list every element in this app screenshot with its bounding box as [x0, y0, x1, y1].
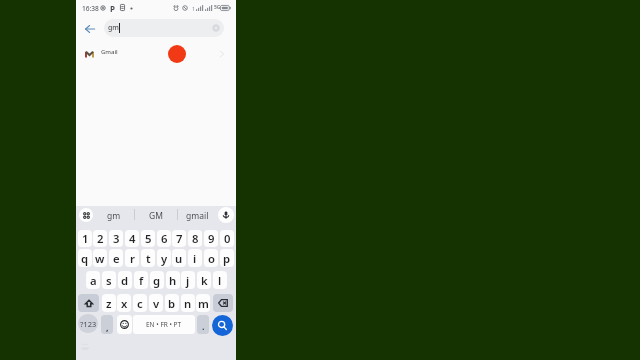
- staticText: i: [193, 251, 197, 266]
- staticText: ,: [106, 321, 109, 333]
- staticText: gm: [107, 210, 121, 222]
- button[interactable]: p: [220, 249, 234, 267]
- button[interactable]: y: [157, 249, 171, 267]
- staticText: 4: [129, 231, 136, 246]
- button[interactable]: w: [93, 249, 107, 267]
- staticText: d: [121, 273, 129, 288]
- staticText: a: [90, 273, 97, 288]
- button[interactable]: g: [150, 271, 164, 289]
- button[interactable]: n: [181, 294, 195, 312]
- button[interactable]: gm: [104, 19, 224, 37]
- button[interactable]: 5: [141, 230, 155, 247]
- button[interactable]: gm: [96, 206, 132, 225]
- button[interactable]: e: [109, 249, 123, 267]
- button[interactable]: i: [188, 249, 202, 267]
- staticText: p: [223, 251, 231, 266]
- button[interactable]: 8: [188, 230, 202, 247]
- button[interactable]: gmail: [179, 206, 215, 225]
- staticText: v: [153, 296, 160, 311]
- button[interactable]: 2: [93, 230, 107, 247]
- staticText: m: [198, 296, 209, 311]
- staticText: f: [139, 273, 144, 288]
- button[interactable]: 1: [78, 230, 92, 247]
- staticText: ?123: [80, 319, 97, 329]
- staticText: r: [130, 251, 135, 266]
- button[interactable]: ,: [101, 315, 113, 334]
- staticText: w: [95, 251, 105, 266]
- staticText: 5G: [214, 4, 221, 11]
- staticText: 9: [208, 231, 215, 246]
- staticText: gmail: [186, 210, 209, 222]
- button[interactable]: 9: [204, 230, 218, 247]
- button[interactable]: j: [181, 271, 195, 289]
- button[interactable]: Search: [212, 315, 233, 336]
- button[interactable]: GM: [138, 206, 174, 225]
- button[interactable]: Gmail: [76, 40, 236, 67]
- staticText: x: [121, 296, 128, 311]
- staticText: t: [146, 251, 151, 266]
- button[interactable]: c: [133, 294, 147, 312]
- button[interactable]: f: [134, 271, 148, 289]
- staticText: gm: [108, 23, 119, 33]
- staticText: q: [81, 251, 89, 266]
- staticText: 1: [192, 5, 196, 12]
- button[interactable]: q: [78, 249, 92, 267]
- button[interactable]: o: [204, 249, 218, 267]
- button[interactable]: Keyboard toolbar: [79, 208, 93, 222]
- staticText: EN • FR • PT: [146, 320, 182, 329]
- button[interactable]: d: [118, 271, 132, 289]
- staticText: GM: [149, 210, 163, 222]
- staticText: 5: [145, 231, 152, 246]
- staticText: 2: [97, 231, 104, 246]
- button[interactable]: l: [213, 271, 227, 289]
- button[interactable]: u: [172, 249, 186, 267]
- staticText: Gmail: [101, 48, 118, 56]
- staticText: l: [218, 273, 222, 288]
- staticText: h: [169, 273, 177, 288]
- button[interactable]: 6: [157, 230, 171, 247]
- button[interactable]: a: [86, 271, 100, 289]
- button[interactable]: 4: [125, 230, 139, 247]
- staticText: s: [106, 273, 112, 288]
- button[interactable]: Shift: [78, 294, 99, 312]
- button[interactable]: 0: [220, 230, 234, 247]
- button[interactable]: k: [197, 271, 211, 289]
- button[interactable]: 3: [109, 230, 123, 247]
- staticText: k: [201, 273, 208, 288]
- staticText: c: [137, 296, 143, 311]
- button[interactable]: v: [149, 294, 163, 312]
- staticText: 16:38: [82, 4, 99, 13]
- staticText: 7: [176, 231, 183, 246]
- staticText: P: [110, 3, 115, 14]
- button[interactable]: Emoji: [117, 315, 132, 334]
- staticText: o: [208, 251, 215, 266]
- staticText: z: [106, 296, 112, 311]
- staticText: 3: [113, 231, 120, 246]
- button[interactable]: x: [117, 294, 131, 312]
- button[interactable]: t: [141, 249, 155, 267]
- staticText: 0: [224, 231, 231, 246]
- button[interactable]: b: [165, 294, 179, 312]
- staticText: b: [168, 296, 176, 311]
- button[interactable]: z: [102, 294, 116, 312]
- staticText: .: [202, 320, 205, 332]
- button[interactable]: Voice input: [218, 207, 234, 223]
- staticText: e: [113, 251, 120, 266]
- button[interactable]: EN • FR • PT: [133, 315, 195, 334]
- staticText: j: [186, 273, 190, 288]
- staticText: 1: [82, 231, 89, 246]
- staticText: 6: [161, 231, 168, 246]
- button[interactable]: ?123: [78, 314, 98, 333]
- staticText: n: [184, 296, 192, 311]
- button[interactable]: s: [102, 271, 116, 289]
- button[interactable]: Backspace: [213, 294, 233, 312]
- button[interactable]: m: [196, 294, 210, 312]
- button[interactable]: h: [166, 271, 180, 289]
- button[interactable]: .: [197, 315, 209, 334]
- button[interactable]: 7: [172, 230, 186, 247]
- button[interactable]: r: [125, 249, 139, 267]
- staticText: g: [153, 273, 161, 288]
- staticText: y: [161, 251, 168, 266]
- button[interactable]: Back: [80, 19, 99, 38]
- staticText: 8: [192, 231, 199, 246]
